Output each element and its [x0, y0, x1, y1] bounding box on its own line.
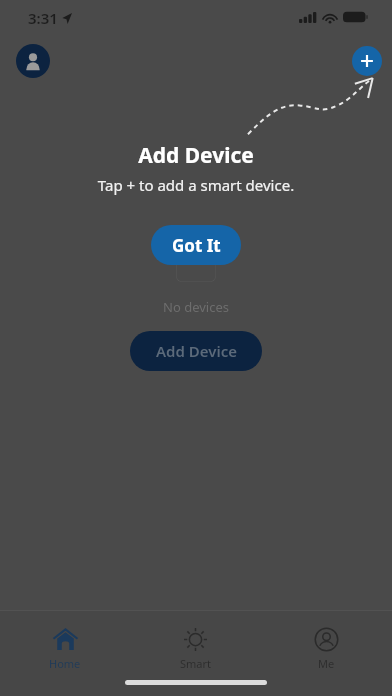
staticText: Me — [318, 656, 335, 671]
staticText: Smart — [180, 656, 212, 671]
button[interactable]: Smart — [130, 623, 261, 675]
button[interactable]: Add Device — [130, 331, 262, 371]
button[interactable]: Add — [352, 46, 382, 76]
staticText: Got It — [172, 234, 221, 257]
staticText: Home — [49, 656, 81, 671]
staticText: Add Device — [0, 141, 392, 170]
button[interactable]: Me — [261, 623, 392, 675]
staticText: Tap + to add a smart device. — [0, 175, 392, 195]
button[interactable]: Got It — [151, 225, 241, 265]
staticText: Add Device — [156, 341, 237, 361]
button[interactable]: Profile — [16, 44, 50, 78]
staticText: No devices — [0, 298, 392, 316]
staticText: 3:31 — [28, 8, 58, 28]
button[interactable]: Home — [0, 623, 130, 675]
